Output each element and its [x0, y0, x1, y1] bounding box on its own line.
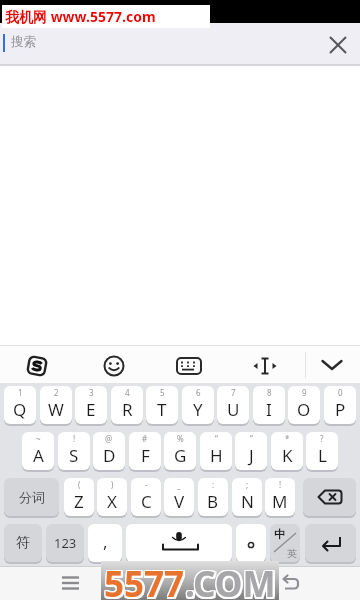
button[interactable]: * [271, 432, 303, 470]
staticText: D [103, 444, 116, 467]
button[interactable]: @ [93, 432, 125, 470]
button[interactable]: ) [97, 478, 127, 516]
staticText: U [227, 398, 240, 421]
button[interactable]: ? [306, 432, 338, 470]
button[interactable]: 1 [4, 386, 36, 424]
staticText: F [141, 444, 150, 467]
staticText: 我机网 www.5577.com [5, 7, 156, 26]
staticText: N [241, 490, 254, 513]
staticText: 6 [196, 387, 201, 398]
staticText: ? [320, 433, 324, 444]
button[interactable]: 中 [270, 524, 300, 562]
staticText: 7 [231, 387, 236, 398]
staticText: _ [177, 479, 181, 490]
button[interactable]: 5 [146, 386, 178, 424]
button[interactable]: 7 [217, 386, 249, 424]
staticText: 5 [160, 387, 165, 398]
staticText: “ [215, 433, 218, 444]
staticText: A [33, 444, 44, 467]
button[interactable]: 8 [253, 386, 285, 424]
button[interactable]: ! [58, 432, 90, 470]
button[interactable]: # [129, 432, 161, 470]
button[interactable] [0, 23, 360, 65]
staticText: B [207, 490, 219, 513]
button[interactable]: ~ [22, 432, 54, 470]
button[interactable]: , [88, 524, 122, 562]
staticText: S [69, 444, 79, 467]
staticText: R [122, 398, 133, 421]
staticText: ; [246, 479, 249, 490]
button[interactable] [236, 524, 266, 562]
button[interactable]: - [131, 478, 161, 516]
button[interactable] [320, 356, 344, 374]
button[interactable] [303, 478, 356, 516]
staticText: 5577 [106, 559, 187, 598]
button[interactable] [126, 524, 232, 562]
staticText: ” [250, 433, 253, 444]
button[interactable]: 分词 [4, 478, 59, 516]
button[interactable] [278, 571, 304, 595]
staticText: 分词 [19, 489, 45, 505]
button[interactable]: ! [265, 478, 295, 516]
staticText: * [285, 433, 290, 444]
button[interactable]: _ [164, 478, 194, 516]
staticText: - [145, 479, 148, 490]
staticText: M [272, 490, 288, 513]
staticText: 4 [125, 387, 130, 398]
staticText: C [141, 490, 152, 513]
button[interactable]: ; [232, 478, 262, 516]
staticText: T [157, 398, 167, 421]
staticText: .COM [184, 562, 275, 600]
staticText: H [210, 444, 223, 467]
button[interactable]: 123 [46, 524, 84, 562]
button[interactable]: 3 [75, 386, 107, 424]
button[interactable]: 0 [324, 386, 356, 424]
staticText: 5577 [104, 560, 185, 599]
staticText: , [103, 530, 108, 553]
button[interactable]: 4 [111, 386, 143, 424]
staticText: 123 [54, 534, 77, 552]
staticText: @ [105, 433, 113, 444]
staticText: : [212, 479, 215, 490]
staticText: K [282, 444, 293, 467]
button[interactable] [58, 570, 84, 596]
staticText: 5577 [106, 562, 187, 600]
button[interactable] [305, 524, 356, 562]
staticText: 8 [267, 387, 272, 398]
staticText: P [335, 398, 346, 421]
button[interactable]: 符 [4, 524, 42, 562]
button[interactable] [102, 354, 126, 378]
button[interactable]: : [198, 478, 228, 516]
staticText: .COM [187, 559, 278, 598]
button[interactable]: ( [64, 478, 94, 516]
button[interactable] [176, 357, 202, 375]
staticText: ! [279, 479, 282, 490]
staticText: .COM [185, 559, 276, 598]
staticText: .COM [187, 562, 278, 600]
button[interactable] [324, 31, 352, 59]
staticText: 5577 [103, 560, 184, 599]
staticText: ( [78, 479, 81, 490]
button[interactable]: 9 [288, 386, 320, 424]
staticText: 5577 [103, 562, 184, 600]
button[interactable] [26, 355, 48, 377]
staticText: G [174, 444, 187, 467]
staticText: ~ [36, 433, 41, 444]
staticText: W [48, 398, 64, 421]
staticText: Z [74, 490, 84, 513]
staticText: V [174, 490, 185, 513]
button[interactable]: % [164, 432, 196, 470]
button[interactable] [251, 355, 279, 377]
staticText: .COM [185, 560, 276, 599]
staticText: O [297, 398, 311, 421]
staticText: Y [193, 398, 203, 421]
staticText: # [142, 433, 148, 444]
staticText: .COM [185, 562, 276, 600]
button[interactable]: 2 [40, 386, 72, 424]
staticText: 符 [16, 534, 30, 552]
staticText: ) [111, 479, 114, 490]
button[interactable]: 6 [182, 386, 214, 424]
staticText: 5577 [106, 560, 187, 599]
button[interactable]: “ [200, 432, 232, 470]
button[interactable]: ” [235, 432, 267, 470]
